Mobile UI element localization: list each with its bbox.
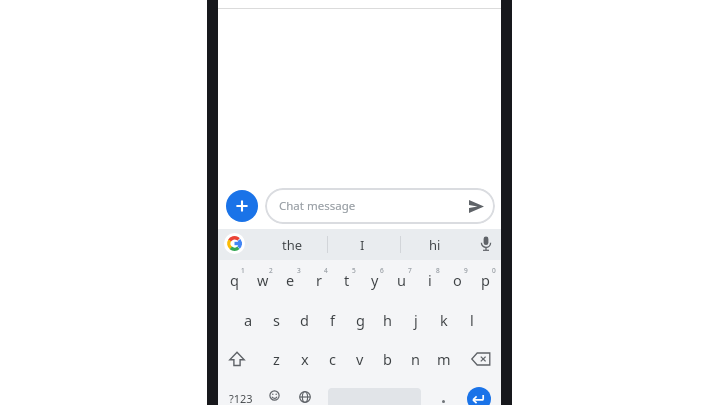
button[interactable]: a xyxy=(235,308,262,332)
staticText: n xyxy=(411,349,420,369)
button[interactable]: f xyxy=(319,308,346,332)
staticText: t xyxy=(344,270,350,290)
button[interactable]: s xyxy=(263,308,290,332)
button[interactable]: o xyxy=(444,268,471,292)
staticText: hi xyxy=(429,236,441,254)
button[interactable]: e xyxy=(277,268,304,292)
staticText: o xyxy=(453,270,462,290)
staticText: f xyxy=(330,310,335,330)
staticText: 1 xyxy=(241,266,245,275)
staticText: 2 xyxy=(269,266,273,275)
button[interactable]: I xyxy=(337,229,387,260)
staticText: w xyxy=(257,270,269,290)
staticText: 3 xyxy=(297,266,301,275)
staticText: p xyxy=(481,270,490,290)
staticText: Chat message xyxy=(279,198,356,214)
staticText: the xyxy=(282,236,303,254)
button[interactable] xyxy=(299,391,311,403)
staticText: 8 xyxy=(436,266,440,275)
staticText: j xyxy=(414,310,418,330)
button[interactable]: hi xyxy=(410,229,460,260)
staticText: v xyxy=(356,349,364,369)
staticText: 4 xyxy=(324,266,328,275)
staticText: x xyxy=(301,349,309,369)
button[interactable]: c xyxy=(319,347,346,371)
staticText: ?123 xyxy=(229,391,253,405)
staticText: y xyxy=(371,270,379,290)
staticText: g xyxy=(356,310,365,330)
button[interactable]: d xyxy=(291,308,318,332)
staticText: I xyxy=(360,236,365,254)
button[interactable]: b xyxy=(374,347,401,371)
button[interactable]: h xyxy=(374,308,401,332)
staticText: i xyxy=(428,270,432,290)
staticText: r xyxy=(316,270,322,290)
staticText: 7 xyxy=(408,266,412,275)
button[interactable]: u xyxy=(388,268,415,292)
button[interactable]: m xyxy=(430,347,457,371)
staticText: c xyxy=(329,349,336,369)
button[interactable]: y xyxy=(361,268,388,292)
button[interactable] xyxy=(269,390,280,401)
staticText: 9 xyxy=(464,266,468,275)
button[interactable] xyxy=(471,352,491,366)
button[interactable]: n xyxy=(402,347,429,371)
staticText: d xyxy=(300,310,309,330)
button[interactable]: the xyxy=(267,229,317,260)
staticText: l xyxy=(470,310,474,330)
staticText: 0 xyxy=(492,266,496,275)
button[interactable]: l xyxy=(458,308,485,332)
staticText: k xyxy=(440,310,448,330)
button[interactable] xyxy=(479,236,493,252)
staticText: z xyxy=(273,349,280,369)
staticText: s xyxy=(273,310,280,330)
button[interactable]: v xyxy=(346,347,373,371)
button[interactable]: Chat message xyxy=(265,188,495,224)
button[interactable]: k xyxy=(430,308,457,332)
staticText: b xyxy=(383,349,392,369)
button[interactable]: g xyxy=(347,308,374,332)
button[interactable] xyxy=(226,190,258,222)
button[interactable]: w xyxy=(249,268,276,292)
button[interactable]: i xyxy=(416,268,443,292)
button[interactable]: r xyxy=(305,268,332,292)
button[interactable]: q xyxy=(221,268,248,292)
staticText: a xyxy=(244,310,253,330)
staticText: h xyxy=(383,310,392,330)
staticText: e xyxy=(286,270,295,290)
staticText: m xyxy=(437,349,451,369)
staticText: 6 xyxy=(380,266,384,275)
button[interactable]: p xyxy=(472,268,499,292)
button[interactable]: ?123 xyxy=(221,388,261,405)
button[interactable] xyxy=(467,387,491,405)
staticText: q xyxy=(230,270,239,290)
staticText: u xyxy=(397,270,406,290)
button[interactable] xyxy=(228,351,246,367)
button[interactable]: j xyxy=(402,308,429,332)
button[interactable]: x xyxy=(291,347,318,371)
button[interactable]: z xyxy=(263,347,290,371)
button[interactable]: t xyxy=(333,268,360,292)
staticText: 5 xyxy=(352,266,356,275)
